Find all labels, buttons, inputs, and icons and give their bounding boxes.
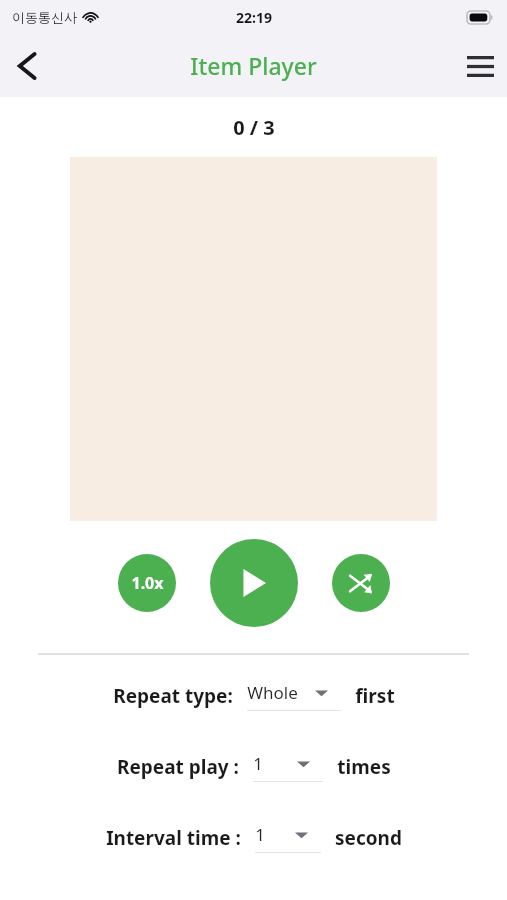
staticText: 0 / 3 (233, 114, 275, 141)
button[interactable]: Shuffle (332, 554, 390, 612)
button[interactable]: 1.0x (118, 554, 176, 612)
button[interactable]: Back (0, 39, 54, 93)
button[interactable]: Repeat type: dropdown (247, 681, 341, 711)
staticText: Interval time : (106, 825, 241, 851)
staticText: times (337, 754, 391, 780)
button[interactable]: Repeat play : dropdown (253, 752, 323, 782)
staticText: Whole (247, 681, 298, 704)
staticText: 1.0x (131, 572, 164, 594)
staticText: 1 (255, 823, 265, 846)
button[interactable]: Interval time : dropdown (255, 823, 321, 853)
staticText: second (335, 825, 402, 851)
staticText: first (355, 683, 395, 709)
staticText: Repeat play : (117, 754, 239, 780)
staticText: 이동통신사 (12, 9, 77, 25)
staticText: Repeat type: (113, 683, 233, 709)
staticText: 22:19 (236, 8, 272, 27)
button[interactable]: Menu (453, 39, 507, 93)
staticText: 1 (253, 752, 263, 775)
staticText: Item Player (190, 50, 317, 81)
button[interactable]: Play (210, 539, 298, 627)
